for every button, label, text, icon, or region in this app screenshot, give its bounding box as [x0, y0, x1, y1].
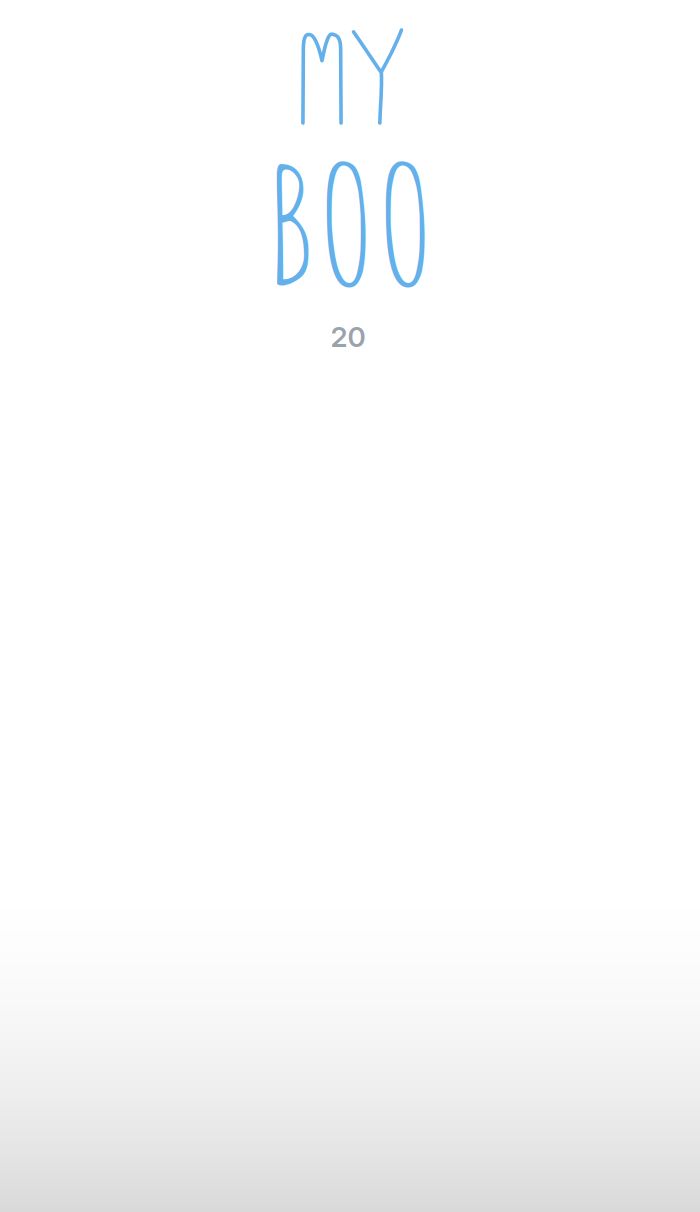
- staticText: BOO: [265, 122, 435, 324]
- staticText: 20: [330, 320, 365, 354]
- button[interactable]: Episode 20 title panel: [0, 0, 700, 1212]
